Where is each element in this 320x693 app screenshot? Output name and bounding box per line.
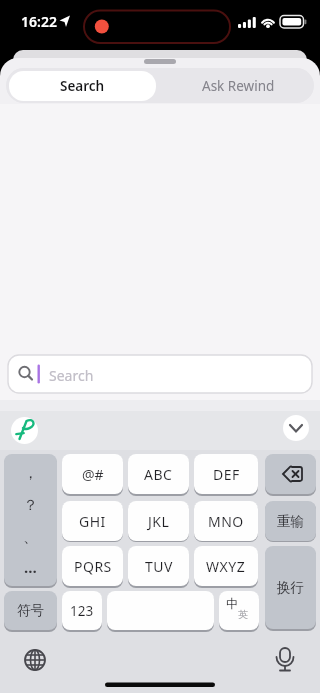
staticText: 符号	[17, 602, 44, 619]
staticText: Search	[60, 77, 105, 95]
button[interactable]	[107, 591, 214, 630]
staticText: GHI	[79, 512, 106, 531]
button[interactable]: DEF	[194, 454, 258, 494]
button[interactable]: 重输	[265, 501, 316, 541]
staticText: 英	[238, 608, 248, 621]
staticText: TUV	[145, 557, 173, 576]
button[interactable]: 123	[62, 591, 102, 630]
button[interactable]	[270, 645, 300, 675]
staticText: 换行	[277, 579, 304, 596]
button[interactable]: 换行	[265, 546, 316, 629]
staticText: 重输	[277, 513, 304, 530]
button[interactable]: 中	[219, 591, 259, 630]
staticText: PQRS	[74, 557, 112, 576]
button[interactable]: MNO	[194, 501, 258, 541]
staticText: Search	[49, 366, 94, 385]
staticText: 16:22	[21, 12, 57, 31]
staticText: ，	[23, 464, 38, 483]
staticText: …	[24, 557, 37, 577]
staticText: 中	[226, 596, 239, 612]
staticText: JKL	[148, 512, 170, 531]
button[interactable]	[11, 417, 38, 444]
button[interactable]: TUV	[128, 546, 189, 586]
button[interactable]: Ask Rewind	[163, 68, 314, 103]
button[interactable]: ABC	[128, 454, 189, 494]
button[interactable]: Search	[9, 71, 156, 101]
button[interactable]: GHI	[62, 501, 123, 541]
staticText: ABC	[144, 465, 173, 484]
button[interactable]: WXYZ	[194, 546, 258, 586]
staticText: 、	[23, 528, 38, 547]
staticText: DEF	[213, 465, 240, 484]
button[interactable]: ，	[4, 454, 57, 586]
button[interactable]: 符号	[4, 591, 57, 630]
staticText: @#	[82, 465, 104, 484]
staticText: ？	[23, 496, 38, 515]
staticText: 123	[70, 602, 94, 620]
button[interactable]: @#	[62, 454, 123, 494]
button[interactable]	[283, 415, 309, 441]
button[interactable]: JKL	[128, 501, 189, 541]
button[interactable]: Search	[8, 355, 312, 393]
button[interactable]	[20, 645, 50, 675]
button[interactable]	[265, 454, 316, 494]
staticText: Ask Rewind	[202, 77, 275, 95]
staticText: MNO	[208, 512, 244, 531]
staticText: WXYZ	[206, 557, 246, 576]
button[interactable]: PQRS	[62, 546, 123, 586]
